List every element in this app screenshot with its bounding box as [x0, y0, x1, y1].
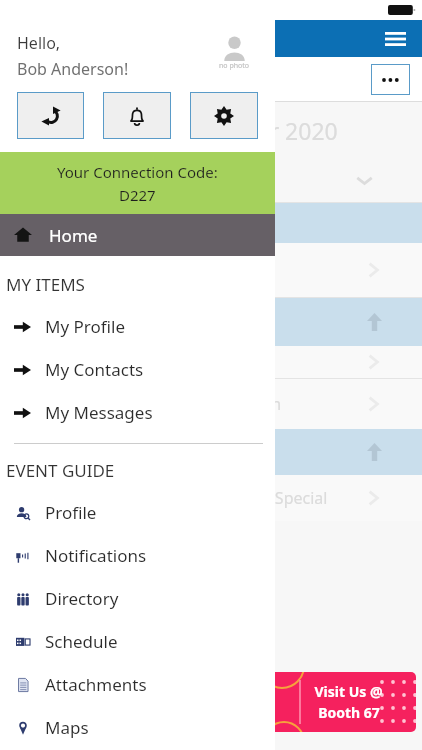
button[interactable]: Maps [0, 706, 275, 749]
staticText: Maps [45, 716, 89, 739]
staticText: Bob Anderson! [17, 58, 129, 80]
staticText: Schedule [45, 630, 118, 653]
button[interactable]: Profile [0, 491, 275, 534]
button[interactable]: Directory [0, 577, 275, 620]
staticText: D227 [119, 185, 156, 205]
button[interactable]: Notifications [103, 92, 171, 139]
staticText: My Profile [45, 315, 125, 338]
button[interactable]: Attachments [0, 663, 275, 706]
staticText: September 2020 [160, 115, 338, 146]
button[interactable]: Refresh [17, 92, 84, 139]
staticText: Directory [45, 587, 119, 610]
staticText: MY ITEMS [6, 273, 85, 296]
staticText: Profile [45, 501, 97, 524]
button[interactable]: My Profile [0, 305, 275, 348]
button[interactable]: Your Connection Code: [0, 152, 275, 214]
staticText: Registration [190, 393, 282, 415]
button[interactable]: Schedule [0, 620, 275, 663]
staticText: Sponsored Special [190, 487, 328, 509]
staticText: My Messages [45, 401, 153, 424]
staticText: Notifications [45, 544, 147, 567]
staticText: Wednesday [14, 69, 96, 89]
staticText: My Contacts [45, 358, 144, 381]
staticText: Booth 67 [318, 703, 380, 722]
staticText: EVENT GUIDE [6, 459, 115, 482]
staticText: Home [49, 224, 98, 247]
button[interactable]: Notifications [0, 534, 275, 577]
button[interactable]: Visit Us @ [264, 672, 416, 732]
staticText: no photo [219, 61, 250, 71]
button[interactable]: My Messages [0, 391, 275, 434]
staticText: Your Connection Code: [57, 162, 218, 182]
button[interactable]: Settings [190, 92, 258, 139]
staticText: Visit Us @ [314, 682, 383, 701]
staticText: Attachments [45, 673, 147, 696]
button[interactable]: Open navigation menu [381, 25, 409, 53]
button[interactable]: More options [371, 64, 410, 95]
button[interactable]: Home [0, 214, 275, 256]
staticText: Hello, [17, 32, 61, 54]
button[interactable]: My Contacts [0, 348, 275, 391]
